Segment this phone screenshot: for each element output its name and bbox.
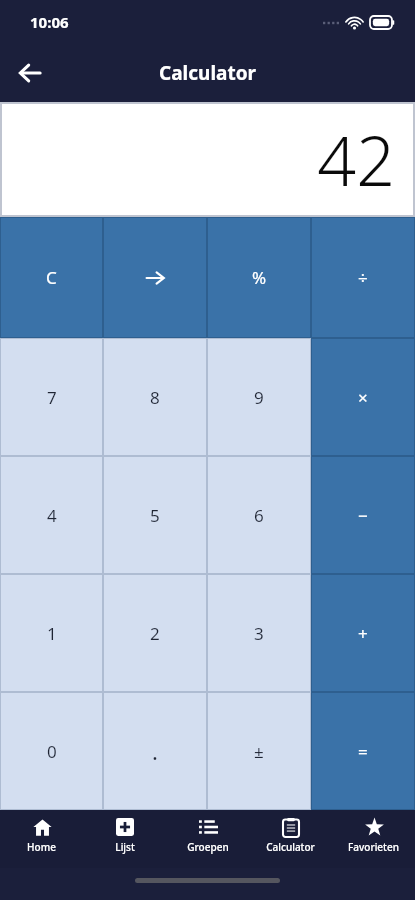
button[interactable]: −: [312, 457, 414, 573]
button[interactable]: 6: [208, 457, 310, 573]
button[interactable]: Back: [8, 51, 52, 95]
staticText: 42: [2, 113, 395, 206]
staticText: C: [46, 266, 57, 289]
button[interactable]: 1: [1, 575, 102, 691]
staticText: −: [358, 504, 368, 527]
button[interactable]: 9: [208, 339, 310, 455]
staticText: Calculator: [159, 60, 257, 86]
staticText: %: [252, 266, 267, 289]
button[interactable]: 0: [1, 693, 102, 809]
staticText: +: [358, 622, 368, 645]
staticText: .: [152, 736, 158, 766]
button[interactable]: 2: [104, 575, 206, 691]
button[interactable]: C: [1, 218, 102, 337]
staticText: Home: [27, 840, 56, 854]
button[interactable]: Groepen: [166, 810, 249, 868]
button[interactable]: 4: [1, 457, 102, 573]
staticText: ±: [254, 740, 264, 763]
staticText: 6: [254, 504, 264, 527]
button[interactable]: 3: [208, 575, 310, 691]
button[interactable]: 8: [104, 339, 206, 455]
button[interactable]: Backspace: [104, 218, 206, 337]
staticText: =: [358, 740, 368, 763]
staticText: 9: [254, 386, 264, 409]
staticText: 5: [150, 504, 160, 527]
button[interactable]: 5: [104, 457, 206, 573]
staticText: 1: [47, 622, 57, 645]
button[interactable]: Lijst: [83, 810, 166, 868]
staticText: Favorieten: [348, 840, 399, 854]
button[interactable]: +: [312, 575, 414, 691]
staticText: ÷: [358, 266, 368, 289]
button[interactable]: =: [312, 693, 414, 809]
staticText: Calculator: [266, 840, 315, 854]
button[interactable]: .: [104, 693, 206, 809]
staticText: 0: [47, 740, 57, 763]
button[interactable]: ×: [312, 339, 414, 455]
button[interactable]: %: [208, 218, 310, 337]
button[interactable]: ÷: [312, 218, 414, 337]
staticText: 10:06: [30, 12, 69, 32]
button[interactable]: Home: [0, 810, 83, 868]
staticText: 8: [150, 386, 160, 409]
staticText: 3: [254, 622, 264, 645]
button[interactable]: ±: [208, 693, 310, 809]
button[interactable]: Calculator: [249, 810, 332, 868]
staticText: Groepen: [187, 840, 229, 854]
staticText: ×: [358, 386, 368, 409]
button[interactable]: 7: [1, 339, 102, 455]
staticText: 2: [150, 622, 160, 645]
staticText: 4: [47, 504, 57, 527]
staticText: 7: [47, 386, 57, 409]
staticText: Lijst: [115, 840, 135, 854]
button[interactable]: Favorieten: [332, 810, 415, 868]
